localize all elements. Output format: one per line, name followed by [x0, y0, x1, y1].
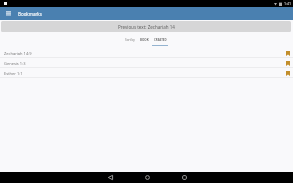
staticText: Previous text: Zechariah 14: [118, 24, 175, 30]
staticText: Sort by: [125, 38, 135, 42]
button[interactable]: Back: [103, 172, 117, 183]
button[interactable]: CREATED: [150, 38, 170, 46]
staticText: 1:41: [284, 1, 292, 6]
button[interactable]: Recent apps: [177, 172, 191, 183]
staticText: Genesis 1:3: [4, 61, 26, 66]
staticText: Zechariah 14:9: [4, 51, 32, 56]
staticText: BOOK: [140, 38, 149, 42]
staticText: Bookmarks: [18, 11, 42, 17]
button[interactable]: Home: [140, 172, 154, 183]
button[interactable]: Zechariah 14:9: [0, 48, 293, 58]
button[interactable]: BOOK: [137, 38, 152, 46]
staticText: Esther 1:1: [4, 71, 23, 76]
button[interactable]: Esther 1:1: [0, 68, 293, 78]
button[interactable]: Previous text: Zechariah 14: [1, 21, 291, 32]
button[interactable]: Genesis 1:3: [0, 58, 293, 68]
button[interactable]: Open navigation drawer: [0, 7, 16, 19]
staticText: CREATED: [154, 38, 167, 42]
